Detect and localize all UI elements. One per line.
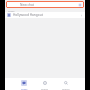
staticText: Chats (21, 87, 28, 90)
button[interactable]: Search (59, 78, 73, 90)
staticText: Chats (8, 9, 15, 12)
staticText: Search (62, 87, 70, 90)
other: Status (42, 80, 48, 86)
staticText: Hollywood Hangout (13, 13, 43, 17)
button[interactable]: Options (78, 3, 82, 7)
staticText: New chat (20, 3, 34, 7)
other: Search (63, 80, 69, 86)
button[interactable]: Chats (17, 78, 31, 90)
other: Chats (21, 80, 27, 86)
button[interactable]: New chat (6, 1, 84, 8)
staticText: Status (41, 87, 49, 90)
button[interactable]: Status (38, 78, 52, 90)
button[interactable]: Hollywood Hangout (5, 12, 85, 18)
